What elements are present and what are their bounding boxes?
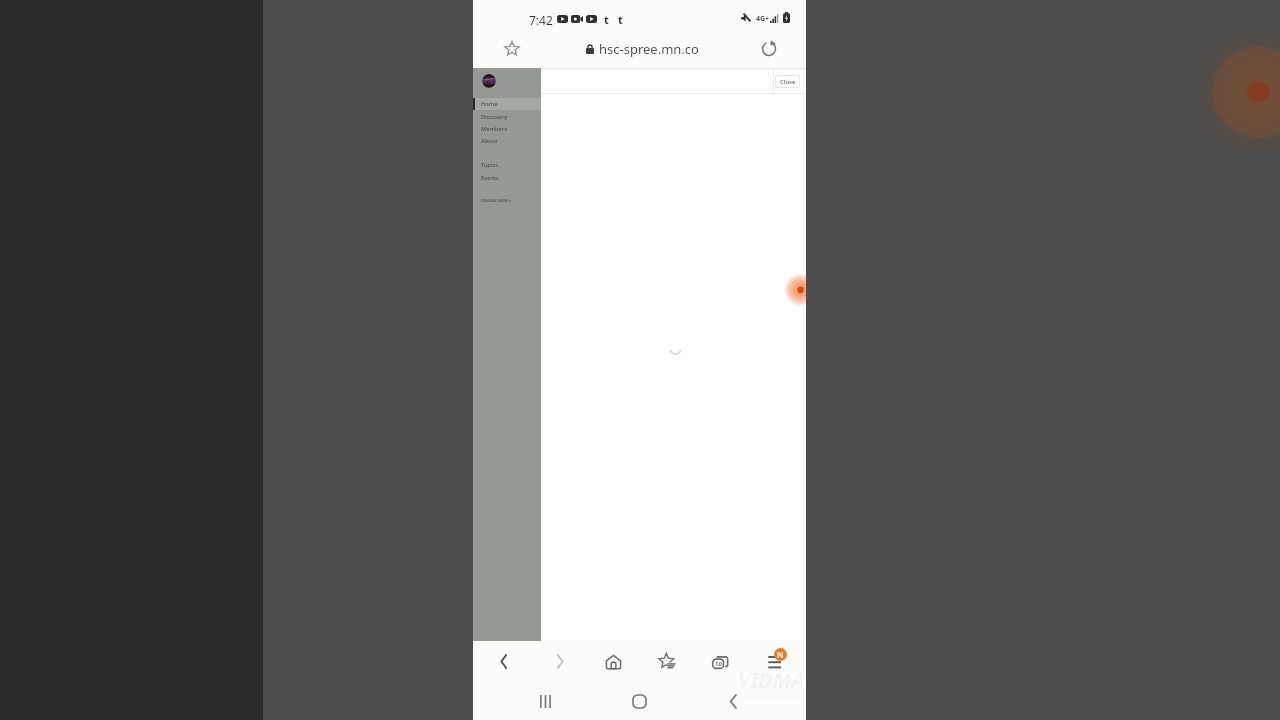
button[interactable]: Recents [523, 682, 567, 720]
button[interactable]: Reload [752, 32, 786, 66]
button[interactable]: Tabs [698, 641, 742, 682]
staticText: About [481, 137, 498, 145]
button[interactable]: Back [482, 641, 526, 682]
staticText: VIDMA [738, 666, 805, 695]
staticText: Events [481, 174, 499, 182]
staticText: ONLINE NOW ▸ [481, 198, 512, 203]
button[interactable]: hsc-spree.mn.co [533, 32, 749, 66]
staticText: Discovery [481, 113, 508, 121]
button[interactable]: Forward [538, 641, 582, 682]
button[interactable]: Bookmark [495, 32, 529, 66]
button[interactable]: Menu [753, 641, 797, 682]
button[interactable]: Discovery [473, 111, 541, 123]
button[interactable]: Bookmarks [645, 641, 689, 682]
staticText: Home [481, 100, 498, 108]
staticText: Topics [481, 161, 498, 169]
button[interactable]: Community logo [482, 74, 496, 88]
button[interactable]: Home [617, 682, 661, 720]
button[interactable]: Back [711, 682, 755, 720]
staticText: hsc-spree.mn.co [599, 40, 699, 58]
staticText: t [604, 12, 609, 27]
button[interactable]: Close [775, 75, 800, 88]
staticText: 4G+ [756, 14, 770, 24]
staticText: 10 [715, 660, 722, 668]
button[interactable]: About [473, 135, 541, 147]
button[interactable]: Events [473, 172, 541, 184]
staticText: Members [481, 125, 507, 133]
button[interactable]: Home [591, 641, 635, 682]
staticText: Close [780, 78, 796, 86]
button[interactable]: Topics [473, 159, 541, 171]
staticText: t [618, 12, 623, 27]
button[interactable]: Members [473, 123, 541, 135]
button[interactable]: Home [473, 98, 541, 110]
staticText: 7:42 [529, 12, 553, 28]
staticText: N [777, 649, 784, 660]
